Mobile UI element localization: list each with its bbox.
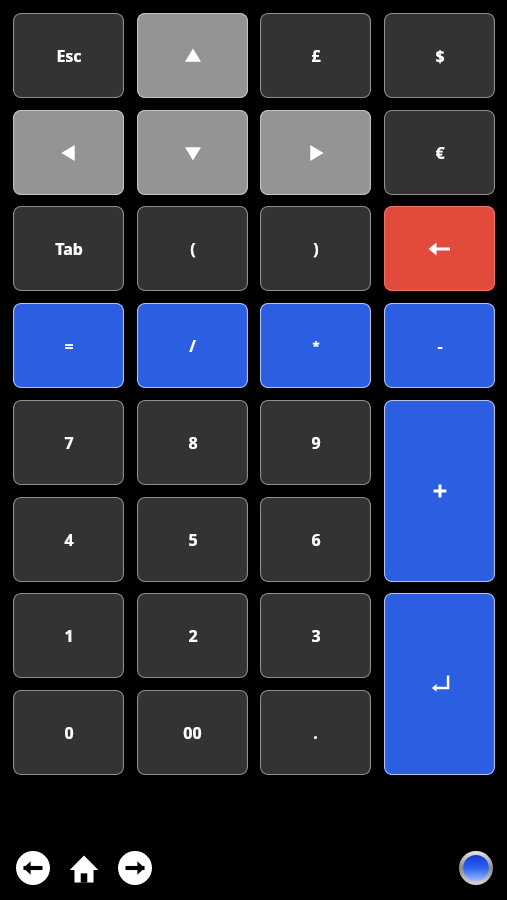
staticText: 5	[188, 529, 198, 551]
staticText: (	[190, 238, 196, 260]
button[interactable]: (	[137, 206, 248, 291]
button[interactable]: £	[260, 13, 371, 98]
button[interactable]: Home	[67, 851, 101, 885]
staticText: *	[312, 337, 320, 355]
button[interactable]: Plus	[384, 400, 495, 582]
button[interactable]: /	[137, 303, 248, 388]
button[interactable]: Arrow down	[137, 110, 248, 195]
button[interactable]: 8	[137, 400, 248, 485]
staticText: 3	[311, 625, 321, 647]
button[interactable]: 1	[13, 593, 124, 678]
button[interactable]: Arrow up	[137, 13, 248, 98]
button[interactable]: 6	[260, 497, 371, 582]
button[interactable]: 2	[137, 593, 248, 678]
button[interactable]: Enter	[384, 593, 495, 775]
staticText: 1	[64, 625, 74, 647]
button[interactable]: .	[260, 690, 371, 775]
staticText: £	[311, 45, 321, 67]
button[interactable]: 5	[137, 497, 248, 582]
button[interactable]: -	[384, 303, 495, 388]
staticText: )	[313, 238, 319, 260]
staticText: Esc	[56, 45, 82, 67]
staticText: 8	[188, 432, 198, 454]
button[interactable]: 0	[13, 690, 124, 775]
button[interactable]: =	[13, 303, 124, 388]
button[interactable]: Back	[16, 851, 50, 885]
button[interactable]: 4	[13, 497, 124, 582]
button[interactable]: )	[260, 206, 371, 291]
button[interactable]: $	[384, 13, 495, 98]
button[interactable]: Backspace	[384, 206, 495, 291]
button[interactable]: €	[384, 110, 495, 195]
button[interactable]: Arrow left	[13, 110, 124, 195]
staticText: 2	[188, 625, 198, 647]
button[interactable]: *	[260, 303, 371, 388]
staticText: Tab	[55, 238, 83, 260]
staticText: 4	[64, 529, 74, 551]
staticText: .	[313, 722, 318, 744]
staticText: €	[435, 142, 445, 164]
staticText: =	[64, 335, 74, 357]
button[interactable]: 00	[137, 690, 248, 775]
button[interactable]: Arrow right	[260, 110, 371, 195]
button[interactable]: Forward	[118, 851, 152, 885]
staticText: $	[435, 45, 445, 67]
staticText: -	[437, 335, 443, 357]
button[interactable]: Esc	[13, 13, 124, 98]
button[interactable]: 7	[13, 400, 124, 485]
staticText: 6	[311, 529, 321, 551]
staticText: 0	[64, 722, 74, 744]
staticText: 7	[64, 432, 74, 454]
button[interactable]: 9	[260, 400, 371, 485]
button[interactable]: Tab	[13, 206, 124, 291]
button[interactable]: 3	[260, 593, 371, 678]
staticText: 00	[183, 722, 202, 744]
staticText: /	[189, 335, 196, 357]
staticText: 9	[311, 432, 321, 454]
button[interactable]: Status indicator	[459, 851, 493, 885]
